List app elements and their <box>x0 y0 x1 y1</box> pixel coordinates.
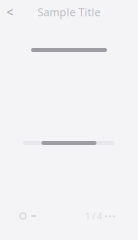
staticText: < <box>6 4 13 20</box>
button[interactable]: Back <box>0 0 20 24</box>
staticText: 1 / 4 ••• <box>85 210 116 222</box>
staticText: Sample Title <box>37 5 100 19</box>
